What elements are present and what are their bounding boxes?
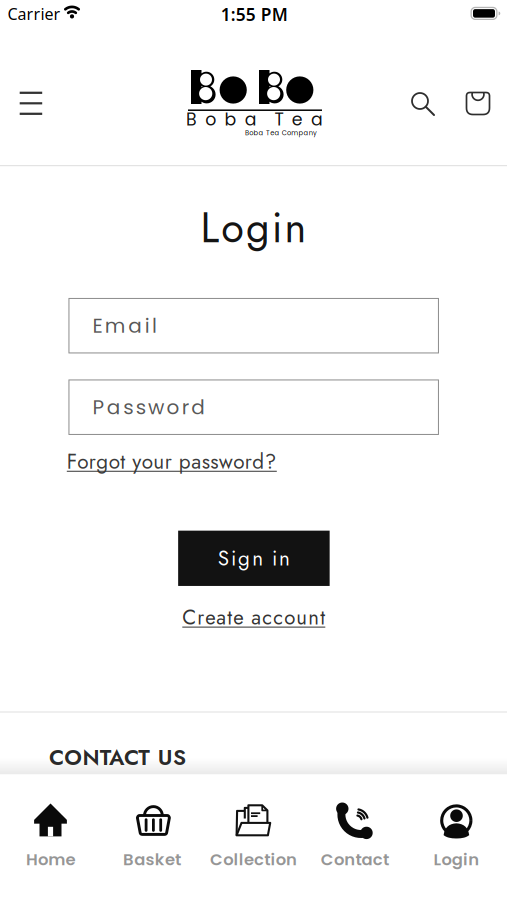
- button[interactable]: Basket: [101, 774, 203, 900]
- staticText: Contact: [321, 848, 389, 871]
- staticText: n: [252, 543, 263, 573]
- staticText: o: [166, 393, 179, 421]
- staticText: e: [292, 107, 303, 132]
- staticText: Home: [26, 848, 75, 871]
- button[interactable]: Menu: [20, 92, 43, 116]
- staticText: a: [311, 107, 323, 132]
- staticText: L: [200, 198, 219, 258]
- staticText: Create account: [182, 603, 325, 632]
- staticText: g: [246, 198, 270, 258]
- button[interactable]: S: [178, 531, 330, 586]
- staticText: r: [182, 393, 189, 421]
- staticText: CONTACT US: [49, 742, 186, 773]
- staticText: i: [272, 198, 283, 258]
- staticText: n: [279, 543, 290, 573]
- staticText: Forgot your password?: [67, 447, 277, 476]
- staticText: T: [275, 107, 284, 132]
- staticText: o: [205, 107, 216, 132]
- staticText: n: [285, 198, 307, 258]
- staticText: s: [123, 393, 133, 421]
- button[interactable]: Home: [0, 774, 101, 900]
- button[interactable]: Create account: [182, 603, 325, 632]
- button[interactable]: Search: [410, 91, 434, 115]
- staticText: i: [272, 543, 277, 573]
- staticText: l: [152, 312, 157, 340]
- staticText: B: [186, 107, 197, 132]
- staticText: Basket: [123, 848, 181, 871]
- staticText: a: [245, 107, 257, 132]
- staticText: 1:55 PM: [221, 3, 288, 26]
- button[interactable]: Contact: [304, 774, 406, 900]
- staticText: b: [224, 107, 236, 132]
- staticText: P: [92, 393, 104, 421]
- staticText: Collection: [210, 848, 297, 871]
- staticText: a: [107, 393, 121, 421]
- staticText: o: [221, 198, 244, 258]
- staticText: Boba Tea Company: [245, 128, 317, 138]
- button[interactable]: E: [68, 298, 439, 353]
- button[interactable]: Login: [406, 774, 507, 900]
- staticText: E: [92, 312, 102, 340]
- staticText: S: [218, 543, 229, 573]
- staticText: i: [145, 312, 150, 340]
- button[interactable]: Cart: [466, 92, 490, 116]
- staticText: i: [231, 543, 236, 573]
- staticText: w: [148, 393, 164, 421]
- button[interactable]: P: [68, 379, 439, 435]
- button[interactable]: Forgot your password?: [67, 447, 277, 476]
- staticText: Carrier: [7, 3, 60, 24]
- button[interactable]: Collection: [203, 774, 304, 900]
- staticText: g: [238, 543, 250, 573]
- staticText: d: [191, 393, 205, 421]
- staticText: s: [136, 393, 146, 421]
- staticText: a: [128, 312, 142, 340]
- button[interactable]: Boba Tea home: [0, 0, 507, 150]
- staticText: Login: [433, 848, 479, 871]
- staticText: m: [105, 312, 126, 340]
